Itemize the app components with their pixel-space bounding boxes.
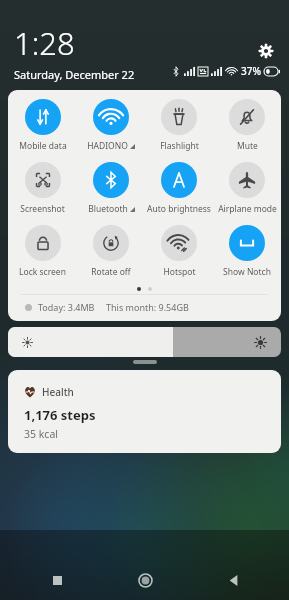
button[interactable]: Screenshot xyxy=(8,160,77,217)
button[interactable]: Health xyxy=(8,370,281,453)
button[interactable]: Airplane mode xyxy=(213,160,281,217)
staticText: Airplane mode xyxy=(218,203,277,215)
button[interactable]: Brightness xyxy=(8,327,281,357)
button[interactable]: Lock screen xyxy=(8,223,77,280)
button[interactable]: Mobile data xyxy=(8,97,77,154)
staticText: Mute xyxy=(237,140,258,152)
staticText: Auto brightness xyxy=(147,203,211,215)
button[interactable]: Home xyxy=(122,560,168,600)
button[interactable]: HADIONO xyxy=(77,97,145,154)
button[interactable]: Settings xyxy=(253,38,279,64)
staticText: Saturday, December 22 xyxy=(14,67,135,82)
button[interactable]: Show Notch xyxy=(213,223,281,280)
staticText: Mobile data xyxy=(19,140,67,152)
staticText: 35 kcal xyxy=(24,427,58,441)
button[interactable]: Mute xyxy=(213,97,281,154)
staticText: Hotspot xyxy=(163,266,196,278)
staticText: 37% xyxy=(241,64,261,78)
staticText: Today: 3.4MB xyxy=(38,301,95,313)
button[interactable]: Back xyxy=(210,560,256,600)
staticText: 1,176 steps xyxy=(24,406,96,424)
button[interactable]: Rotate off xyxy=(77,223,145,280)
staticText: This month: 9.54GB xyxy=(106,301,189,313)
staticText: Rotate off xyxy=(91,266,131,278)
button[interactable]: Flashlight xyxy=(145,97,213,154)
staticText: Health xyxy=(42,385,74,399)
staticText: Flashlight xyxy=(160,140,199,152)
staticText: HADIONO xyxy=(87,140,128,152)
staticText: 1:28 xyxy=(14,22,75,64)
button[interactable]: Auto brightness xyxy=(145,160,213,217)
staticText: Bluetooth xyxy=(88,203,128,215)
button[interactable]: Bluetooth xyxy=(77,160,145,217)
staticText: Screenshot xyxy=(20,203,65,215)
staticText: Lock screen xyxy=(19,266,66,278)
staticText: Show Notch xyxy=(223,266,271,278)
button[interactable]: Recents xyxy=(34,560,80,600)
button[interactable]: Hotspot xyxy=(145,223,213,280)
button[interactable]: Today: 3.4MB xyxy=(8,295,281,319)
